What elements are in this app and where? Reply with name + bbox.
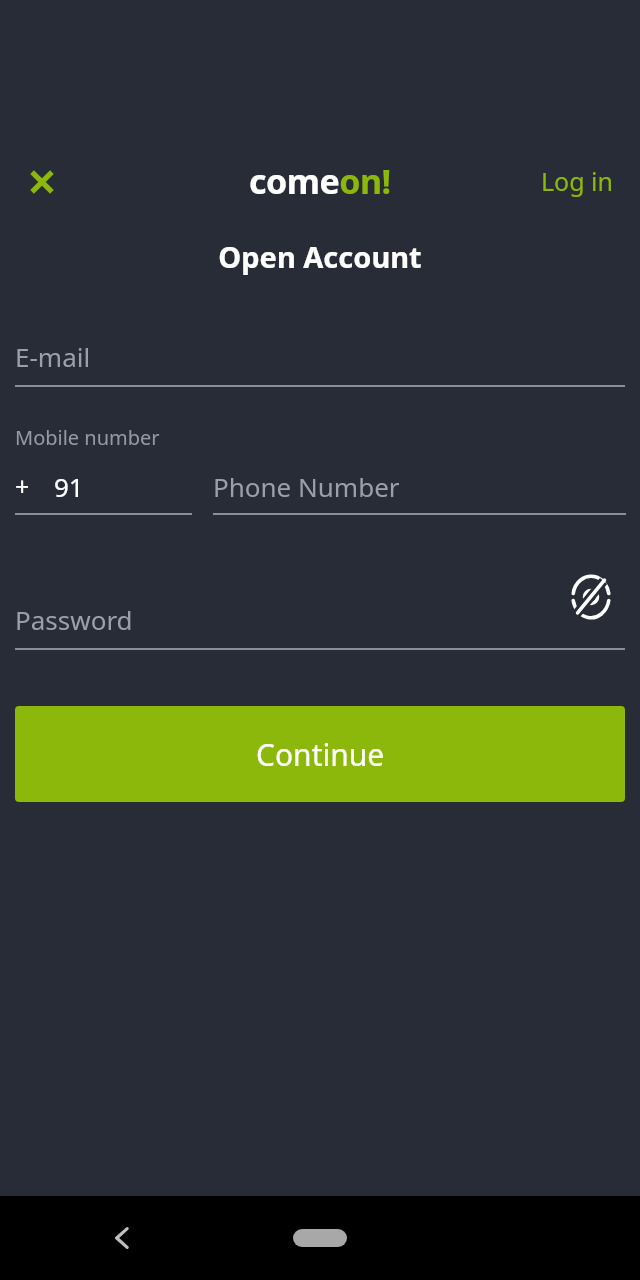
button[interactable]: Log in bbox=[528, 158, 626, 204]
staticText: Log in bbox=[541, 164, 614, 198]
button[interactable]: + bbox=[15, 460, 192, 512]
button[interactable]: E-mail bbox=[15, 325, 625, 387]
staticText: Phone Number bbox=[213, 469, 400, 504]
button[interactable]: Close bbox=[12, 152, 72, 212]
button[interactable]: Phone Number bbox=[213, 460, 626, 512]
staticText: Mobile number bbox=[15, 424, 160, 451]
staticText: comeon! bbox=[249, 158, 391, 204]
button[interactable]: Password bbox=[15, 588, 560, 650]
button[interactable]: Back bbox=[93, 1196, 153, 1280]
staticText: + bbox=[15, 469, 30, 503]
staticText: E-mail bbox=[15, 339, 91, 374]
button[interactable]: Continue bbox=[15, 706, 625, 802]
staticText: Continue bbox=[256, 734, 385, 775]
staticText: Password bbox=[15, 602, 133, 637]
button[interactable]: Show password bbox=[560, 566, 622, 628]
button[interactable]: Home bbox=[293, 1229, 347, 1247]
staticText: Open Account bbox=[218, 237, 422, 276]
staticText: 91 bbox=[54, 469, 84, 504]
